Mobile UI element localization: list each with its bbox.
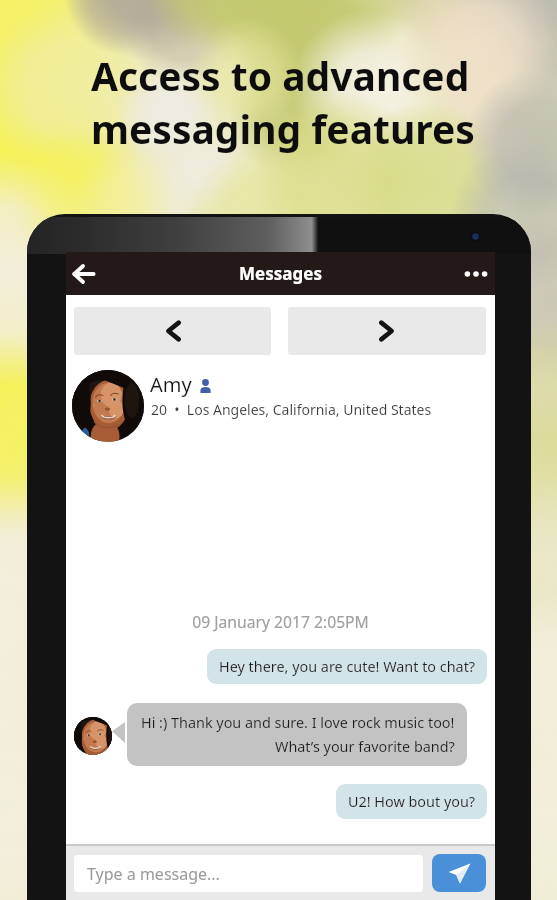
button[interactable]: Hey there, you are cute! Want to chat?: [207, 649, 487, 684]
staticText: Hey there, you are cute! Want to chat?: [219, 657, 476, 677]
button[interactable]: Next: [288, 307, 486, 355]
staticText: Messages: [239, 262, 322, 285]
button[interactable]: Send: [432, 854, 486, 892]
staticText: Access to advanced: [91, 49, 470, 102]
staticText: U2! How bout you?: [348, 792, 476, 812]
staticText: Type a message...: [87, 863, 220, 885]
button[interactable]: Previous: [74, 307, 271, 355]
button[interactable]: Back: [66, 252, 101, 295]
button[interactable]: Hi :) Thank you and sure. I love rock mu…: [127, 703, 467, 766]
button[interactable]: U2! How bout you?: [336, 784, 487, 819]
staticText: What’s your favorite band?: [275, 737, 455, 757]
staticText: 20 • Los Angeles, California, United Sta…: [151, 400, 432, 419]
staticText: Hi :) Thank you and sure. I love rock mu…: [141, 713, 455, 733]
button[interactable]: Type a message...: [74, 855, 423, 892]
staticText: 09 January 2017 2:05PM: [66, 611, 495, 632]
staticText: Amy: [150, 371, 192, 398]
staticText: messaging features: [91, 102, 475, 155]
button[interactable]: More options: [456, 252, 495, 295]
